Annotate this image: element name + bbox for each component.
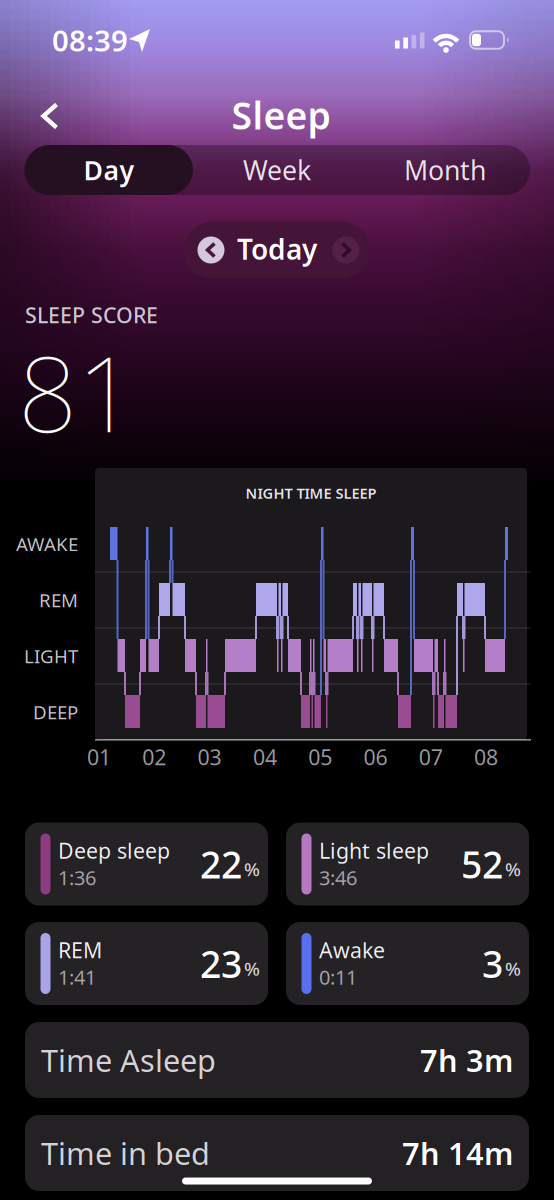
staticText: 22 xyxy=(200,839,242,889)
staticText: Day xyxy=(83,152,134,188)
staticText: 07 xyxy=(419,743,443,771)
staticText: 01 xyxy=(87,743,111,771)
staticText: 1:41 xyxy=(58,964,96,990)
staticText: LIGHT xyxy=(24,644,78,668)
staticText: NIGHT TIME SLEEP xyxy=(245,483,376,503)
staticText: 05 xyxy=(308,743,332,771)
staticText: Week xyxy=(243,152,311,188)
staticText: % xyxy=(244,857,260,881)
staticText: Time Asleep xyxy=(41,1040,216,1080)
staticText: % xyxy=(505,956,521,981)
button[interactable]: Previous day xyxy=(197,236,224,263)
staticText: 03 xyxy=(198,743,222,771)
staticText: Awake xyxy=(319,936,385,964)
staticText: REM xyxy=(39,588,78,612)
staticText: 23 xyxy=(200,939,242,988)
staticText: % xyxy=(505,857,521,881)
staticText: 08:39 xyxy=(52,20,128,59)
staticText: DEEP xyxy=(33,700,78,724)
button[interactable]: Month xyxy=(361,145,529,195)
staticText: Time in bed xyxy=(41,1133,210,1173)
staticText: % xyxy=(244,956,260,981)
staticText: 0:11 xyxy=(319,964,357,990)
staticText: 3:46 xyxy=(319,864,357,891)
staticText: 02 xyxy=(142,743,166,771)
staticText: 52 xyxy=(461,839,503,889)
staticText: Light sleep xyxy=(319,836,429,865)
staticText: 06 xyxy=(363,743,387,771)
button[interactable]: Back xyxy=(28,94,72,138)
staticText: Month xyxy=(404,152,486,188)
button[interactable]: Next day xyxy=(332,236,359,263)
staticText: 04 xyxy=(253,743,277,771)
staticText: 7h 3m xyxy=(420,1040,513,1080)
staticText: Today xyxy=(237,230,317,268)
staticText: AWAKE xyxy=(16,532,78,556)
button[interactable]: Day xyxy=(25,145,193,195)
staticText: SLEEP SCORE xyxy=(25,301,158,329)
staticText: 08 xyxy=(474,743,498,771)
staticText: Deep sleep xyxy=(58,836,170,865)
staticText: 3 xyxy=(482,939,503,988)
staticText: Sleep xyxy=(231,90,330,140)
button[interactable]: Week xyxy=(193,145,361,195)
staticText: 7h 14m xyxy=(402,1133,513,1173)
staticText: 1:36 xyxy=(58,864,96,891)
staticText: REM xyxy=(58,936,102,964)
staticText: 81 xyxy=(18,323,136,461)
